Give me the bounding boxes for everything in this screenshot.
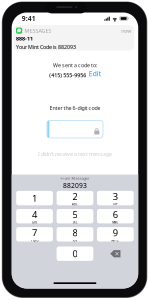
- staticText: MESSAGES: [24, 27, 51, 34]
- button[interactable]: 9: [97, 227, 134, 241]
- staticText: ABC: [72, 202, 78, 206]
- staticText: TUV: [72, 239, 77, 242]
- button[interactable]: 1: [16, 191, 53, 205]
- staticText: JKL: [73, 221, 77, 224]
- staticText: (415) 555-9956: [49, 72, 86, 79]
- staticText: WXYZ: [111, 239, 119, 242]
- button[interactable]: 8: [57, 227, 93, 241]
- staticText: Edit: [89, 69, 101, 78]
- button[interactable]: 0: [57, 246, 93, 261]
- staticText: PQRS: [31, 239, 38, 242]
- staticText: We sent a code to:: [53, 62, 97, 69]
- button[interactable]: Delete: [97, 246, 134, 261]
- staticText: 5: [72, 208, 77, 221]
- button[interactable]: 3: [97, 191, 134, 205]
- button[interactable]: 7: [16, 227, 53, 241]
- button[interactable]: Enter code: [47, 120, 103, 138]
- staticText: DEF: [113, 202, 117, 206]
- staticText: Enter the 6-digit code: [49, 104, 100, 111]
- staticText: 3: [113, 190, 118, 202]
- staticText: 8: [72, 226, 77, 239]
- button[interactable]: I didn't receive a text message: [38, 150, 112, 158]
- staticText: Your Mint Code is 882093: [16, 43, 76, 50]
- button[interactable]: Edit: [89, 69, 101, 79]
- staticText: now: [121, 27, 131, 34]
- staticText: 9:41: [22, 14, 36, 23]
- staticText: GHI: [32, 221, 37, 224]
- staticText: 1: [32, 192, 37, 204]
- staticText: 7: [32, 226, 37, 239]
- staticText: 4: [32, 208, 37, 221]
- button[interactable]: 6: [97, 209, 134, 223]
- staticText: 9: [113, 226, 118, 239]
- staticText: I didn't receive a text message: [38, 150, 112, 158]
- button[interactable]: 2: [57, 191, 93, 205]
- staticText: From Messages: [60, 176, 89, 181]
- button[interactable]: MESSAGES: [13, 25, 134, 50]
- staticText: 0: [72, 247, 77, 260]
- staticText: MNO: [112, 221, 118, 224]
- button[interactable]: 4: [16, 209, 53, 223]
- button[interactable]: From Messages: [12, 174, 138, 191]
- staticText: 6: [113, 208, 118, 221]
- staticText: 2: [72, 190, 77, 202]
- staticText: 882093: [63, 181, 87, 190]
- button[interactable]: 5: [57, 209, 93, 223]
- staticText: 888-11: [16, 35, 33, 42]
